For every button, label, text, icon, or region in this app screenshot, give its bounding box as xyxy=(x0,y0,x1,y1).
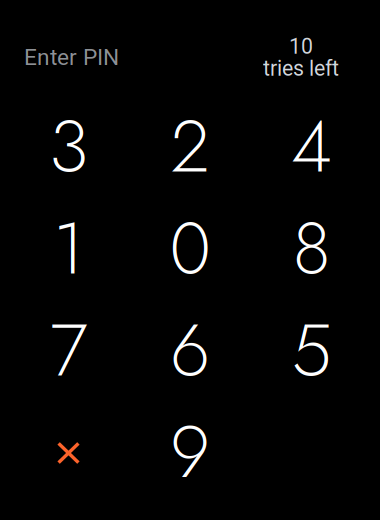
staticText: 3 xyxy=(49,94,88,198)
staticText: 10 xyxy=(289,34,313,59)
staticText: tries left xyxy=(263,56,339,81)
button[interactable]: 9 xyxy=(129,401,250,502)
staticText: 2 xyxy=(170,94,209,198)
button[interactable]: 4 xyxy=(251,96,372,197)
staticText: 1 xyxy=(53,196,84,300)
button[interactable]: 5 xyxy=(251,300,372,401)
button[interactable]: 7 xyxy=(8,300,129,401)
button[interactable]: Delete xyxy=(8,401,129,502)
staticText: 5 xyxy=(291,298,331,402)
staticText: 0 xyxy=(169,196,210,300)
button[interactable]: 8 xyxy=(251,198,372,299)
button[interactable]: 3 xyxy=(8,96,129,197)
button[interactable]: 1 xyxy=(8,198,129,299)
staticText: 4 xyxy=(291,94,332,198)
staticText: 7 xyxy=(50,298,87,402)
button[interactable]: 0 xyxy=(129,198,250,299)
staticText: 6 xyxy=(170,298,210,402)
staticText: 8 xyxy=(292,196,330,300)
staticText: Enter PIN xyxy=(24,44,119,71)
staticText: 9 xyxy=(170,400,210,504)
button[interactable]: 2 xyxy=(129,96,250,197)
button[interactable]: 6 xyxy=(129,300,250,401)
